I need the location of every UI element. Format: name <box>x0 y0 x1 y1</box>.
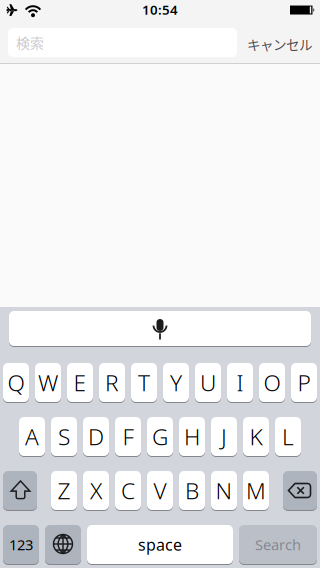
staticText: R <box>105 367 119 397</box>
button[interactable]: V <box>147 470 173 510</box>
button[interactable]: L <box>275 416 301 456</box>
staticText: H <box>184 421 200 451</box>
button[interactable]: J <box>211 416 237 456</box>
staticText: N <box>215 475 232 505</box>
staticText: J <box>221 421 227 451</box>
button[interactable]: B <box>179 470 205 510</box>
button[interactable]: X <box>83 470 109 510</box>
staticText: D <box>88 421 104 451</box>
button[interactable]: Search <box>239 524 317 564</box>
button[interactable]: Y <box>163 362 189 402</box>
button[interactable]: U <box>195 362 221 402</box>
staticText: 検索 <box>16 32 44 53</box>
button[interactable]: R <box>99 362 125 402</box>
button[interactable]: M <box>243 470 269 510</box>
staticText: A <box>25 421 39 451</box>
staticText: P <box>297 367 310 397</box>
staticText: 123 <box>9 535 33 554</box>
staticText: M <box>246 475 266 505</box>
staticText: 10:54 <box>142 1 178 18</box>
staticText: O <box>263 367 280 397</box>
staticText: V <box>153 475 166 505</box>
button[interactable]: K <box>243 416 269 456</box>
button[interactable]: I <box>227 362 253 402</box>
button[interactable] <box>9 310 311 346</box>
button[interactable]: D <box>83 416 109 456</box>
button[interactable]: C <box>115 470 141 510</box>
staticText: space <box>138 534 182 555</box>
button[interactable]: space <box>87 524 233 564</box>
button[interactable]: Q <box>3 362 29 402</box>
staticText: C <box>121 475 135 505</box>
staticText: G <box>152 421 168 451</box>
staticText: Q <box>7 367 24 397</box>
button[interactable]: 検索 <box>8 28 237 57</box>
button[interactable]: T <box>131 362 157 402</box>
staticText: I <box>236 367 243 397</box>
button[interactable]: H <box>179 416 205 456</box>
button[interactable]: Z <box>51 470 77 510</box>
staticText: X <box>90 475 102 505</box>
button[interactable]: キャンセル <box>247 34 313 54</box>
button[interactable] <box>283 470 317 510</box>
staticText: Search <box>255 535 301 554</box>
button[interactable]: 123 <box>3 524 39 564</box>
staticText: E <box>73 367 86 397</box>
button[interactable]: P <box>291 362 317 402</box>
button[interactable]: S <box>51 416 77 456</box>
staticText: T <box>138 367 150 397</box>
staticText: L <box>282 421 294 451</box>
staticText: U <box>200 367 216 397</box>
button[interactable]: W <box>35 362 61 402</box>
staticText: B <box>185 475 199 505</box>
button[interactable]: N <box>211 470 237 510</box>
staticText: K <box>249 421 262 451</box>
button[interactable]: G <box>147 416 173 456</box>
staticText: Y <box>170 367 182 397</box>
button[interactable]: F <box>115 416 141 456</box>
button[interactable]: O <box>259 362 285 402</box>
staticText: S <box>58 421 70 451</box>
staticText: F <box>122 421 133 451</box>
staticText: Z <box>57 475 70 505</box>
staticText: W <box>38 367 58 397</box>
button[interactable] <box>45 524 81 564</box>
button[interactable]: A <box>19 416 45 456</box>
button[interactable]: E <box>67 362 93 402</box>
button[interactable] <box>3 470 37 510</box>
staticText: キャンセル <box>247 34 313 54</box>
